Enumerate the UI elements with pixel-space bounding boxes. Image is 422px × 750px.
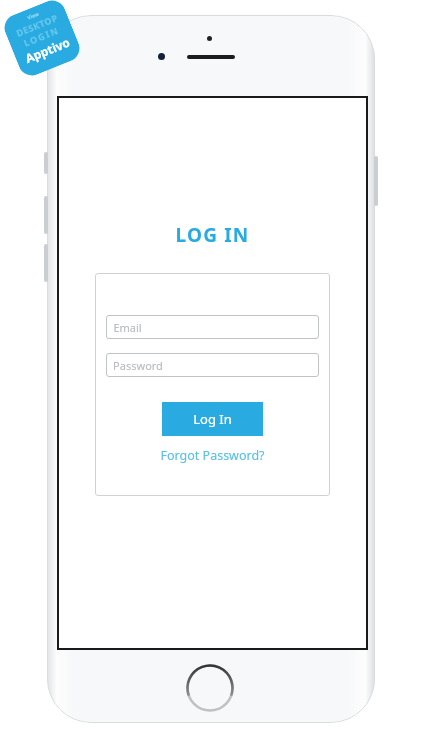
button[interactable]: Desktop Login for Apptivo badge [0,0,84,80]
button[interactable]: Forgot Password? [154,445,271,466]
staticText: LOGIN [21,23,61,49]
button[interactable]: Password [106,353,319,377]
staticText: LOG IN [175,222,250,248]
staticText: View [26,11,40,22]
staticText: Password [113,358,163,373]
staticText: Log In [193,410,232,428]
staticText: Forgot Password? [160,447,265,464]
staticText: Email [113,320,142,335]
staticText: Apptivo [22,34,72,66]
button[interactable]: Email [106,315,319,339]
button[interactable]: Log In [162,402,263,436]
staticText: DESKTOP [14,11,59,39]
